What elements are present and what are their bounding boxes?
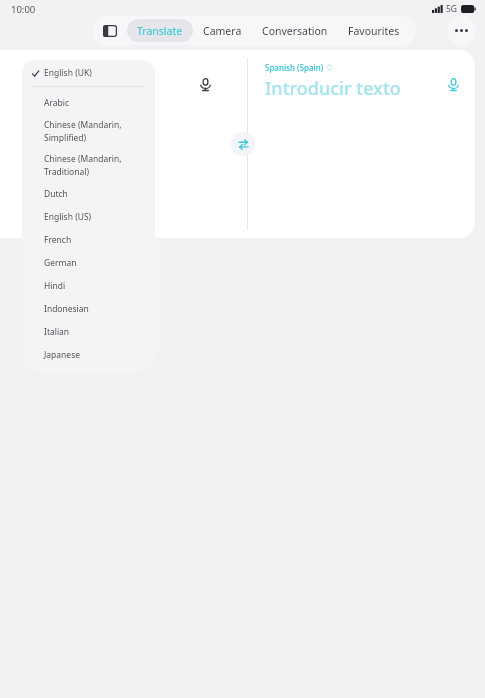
button[interactable]: Spanish (Spain) — [265, 62, 332, 73]
button[interactable]: More options — [447, 16, 476, 45]
button[interactable]: French — [22, 228, 155, 251]
staticText: English (US) — [44, 211, 92, 223]
staticText: Japanese — [44, 349, 80, 361]
button[interactable]: Camera — [193, 16, 252, 45]
staticText: Arabic — [44, 97, 70, 109]
staticText: Indonesian — [44, 303, 89, 315]
staticText: Italian — [44, 326, 70, 338]
button[interactable]: English (US) — [22, 205, 155, 228]
button[interactable]: Voice input Spanish — [441, 72, 465, 96]
button[interactable]: Arabic — [22, 91, 155, 114]
staticText: Introducir texto — [265, 76, 401, 101]
button[interactable]: English (UK) — [22, 60, 155, 86]
button[interactable]: Japanese — [22, 343, 155, 366]
staticText: 5G — [446, 3, 458, 15]
button[interactable]: Indonesian — [22, 297, 155, 320]
staticText: Chinese (Mandarin, — [44, 153, 122, 165]
button[interactable]: Favourites — [338, 16, 410, 45]
staticText: Camera — [203, 24, 242, 38]
staticText: Hindi — [44, 280, 66, 292]
staticText: Simplified) — [44, 132, 87, 144]
button[interactable]: Hindi — [22, 274, 155, 297]
staticText: Favourites — [348, 24, 400, 38]
staticText: 10:00 — [11, 3, 36, 16]
button[interactable]: Chinese (Mandarin, — [22, 148, 155, 182]
button[interactable]: Conversation — [252, 16, 338, 45]
staticText: Chinese (Mandarin, — [44, 119, 122, 131]
staticText: French — [44, 234, 72, 246]
staticText: Translate — [137, 24, 183, 38]
button[interactable]: Italian — [22, 320, 155, 343]
staticText: Traditional) — [44, 166, 89, 178]
button[interactable]: Swap languages — [231, 132, 255, 156]
button[interactable]: German — [22, 251, 155, 274]
staticText: Dutch — [44, 188, 68, 200]
button[interactable]: Voice input — [193, 72, 217, 96]
button[interactable]: Toggle sidebar — [93, 16, 127, 45]
button[interactable]: Chinese (Mandarin, — [22, 114, 155, 148]
staticText: English (UK) — [44, 67, 92, 79]
button[interactable]: Dutch — [22, 182, 155, 205]
staticText: Conversation — [262, 24, 328, 38]
button[interactable]: Translate — [127, 19, 193, 42]
staticText: German — [44, 257, 77, 269]
staticText: Spanish (Spain) — [265, 62, 324, 73]
